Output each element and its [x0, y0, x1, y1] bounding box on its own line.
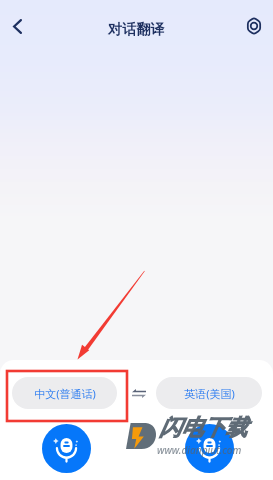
button[interactable]: 中文(普通话) [12, 377, 117, 409]
button[interactable]: Back [0, 9, 34, 43]
button[interactable]: Record [42, 424, 91, 473]
staticText: 对话翻译 [108, 20, 165, 38]
staticText: 闪电下载 [159, 414, 247, 442]
staticText: 中文(普通话) [34, 386, 96, 401]
button[interactable]: Swap languages [117, 379, 156, 407]
button[interactable]: Record [185, 424, 234, 473]
button[interactable]: Settings [237, 9, 271, 43]
button[interactable]: 英语(美国) [156, 377, 262, 409]
staticText: www.dianpiut.com [157, 443, 242, 457]
staticText: 英语(美国) [184, 386, 235, 401]
